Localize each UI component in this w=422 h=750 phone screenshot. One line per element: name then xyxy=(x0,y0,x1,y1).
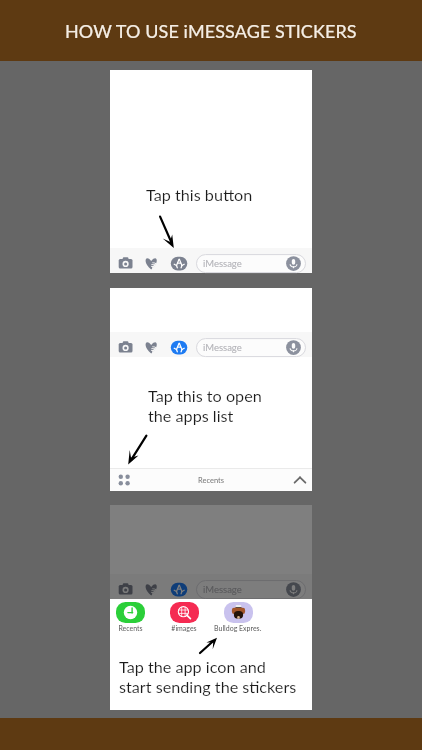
staticText: Tap the app icon and start sending the s… xyxy=(119,657,297,697)
button[interactable]: Bulldog Expres… xyxy=(214,602,262,632)
staticText: iMessage xyxy=(203,342,242,353)
staticText: #images xyxy=(171,624,197,632)
staticText: Tap this button xyxy=(146,185,253,204)
staticText: HOW TO USE iMESSAGE STICKERS xyxy=(65,20,357,42)
staticText: Recents xyxy=(118,624,143,632)
staticText: Recents xyxy=(198,476,224,485)
staticText: Tap this to open the apps list xyxy=(148,386,262,426)
button[interactable]: iMessage xyxy=(110,288,312,491)
button[interactable]: iMessage xyxy=(110,505,312,710)
button[interactable]: Tap this button xyxy=(110,70,312,273)
button[interactable]: Recents xyxy=(106,602,154,632)
staticText: iMessage xyxy=(203,258,242,269)
staticText: iMessage xyxy=(203,584,242,595)
button[interactable]: #images xyxy=(160,602,208,632)
button[interactable]: HOW TO USE iMESSAGE STICKERS xyxy=(0,0,422,61)
button[interactable]: Apps drawer xyxy=(110,469,312,491)
staticText: Bulldog Expres… xyxy=(214,624,262,632)
